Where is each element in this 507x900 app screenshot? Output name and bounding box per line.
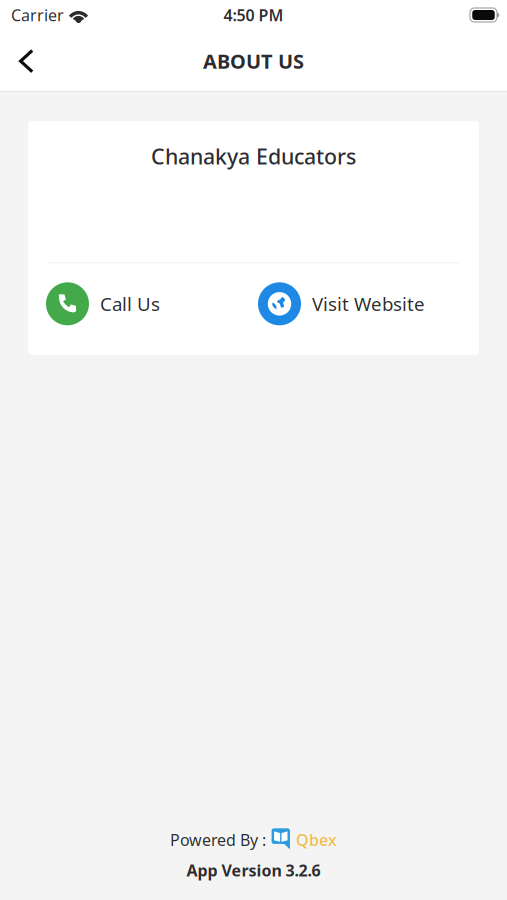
staticText: App Version 3.2.6 [186,860,320,881]
button[interactable]: Back [5,38,48,83]
button[interactable]: Visit Website [258,282,425,325]
button[interactable]: Call Us [46,282,160,325]
staticText: ABOUT US [203,48,304,74]
staticText: Qbex [296,829,337,850]
staticText: 4:50 PM [223,4,283,26]
staticText: Carrier [11,4,64,26]
staticText: Call Us [100,291,160,316]
staticText: Chanakya Educators [151,142,356,170]
staticText: Visit Website [312,291,425,316]
staticText: Powered By : [170,829,266,850]
